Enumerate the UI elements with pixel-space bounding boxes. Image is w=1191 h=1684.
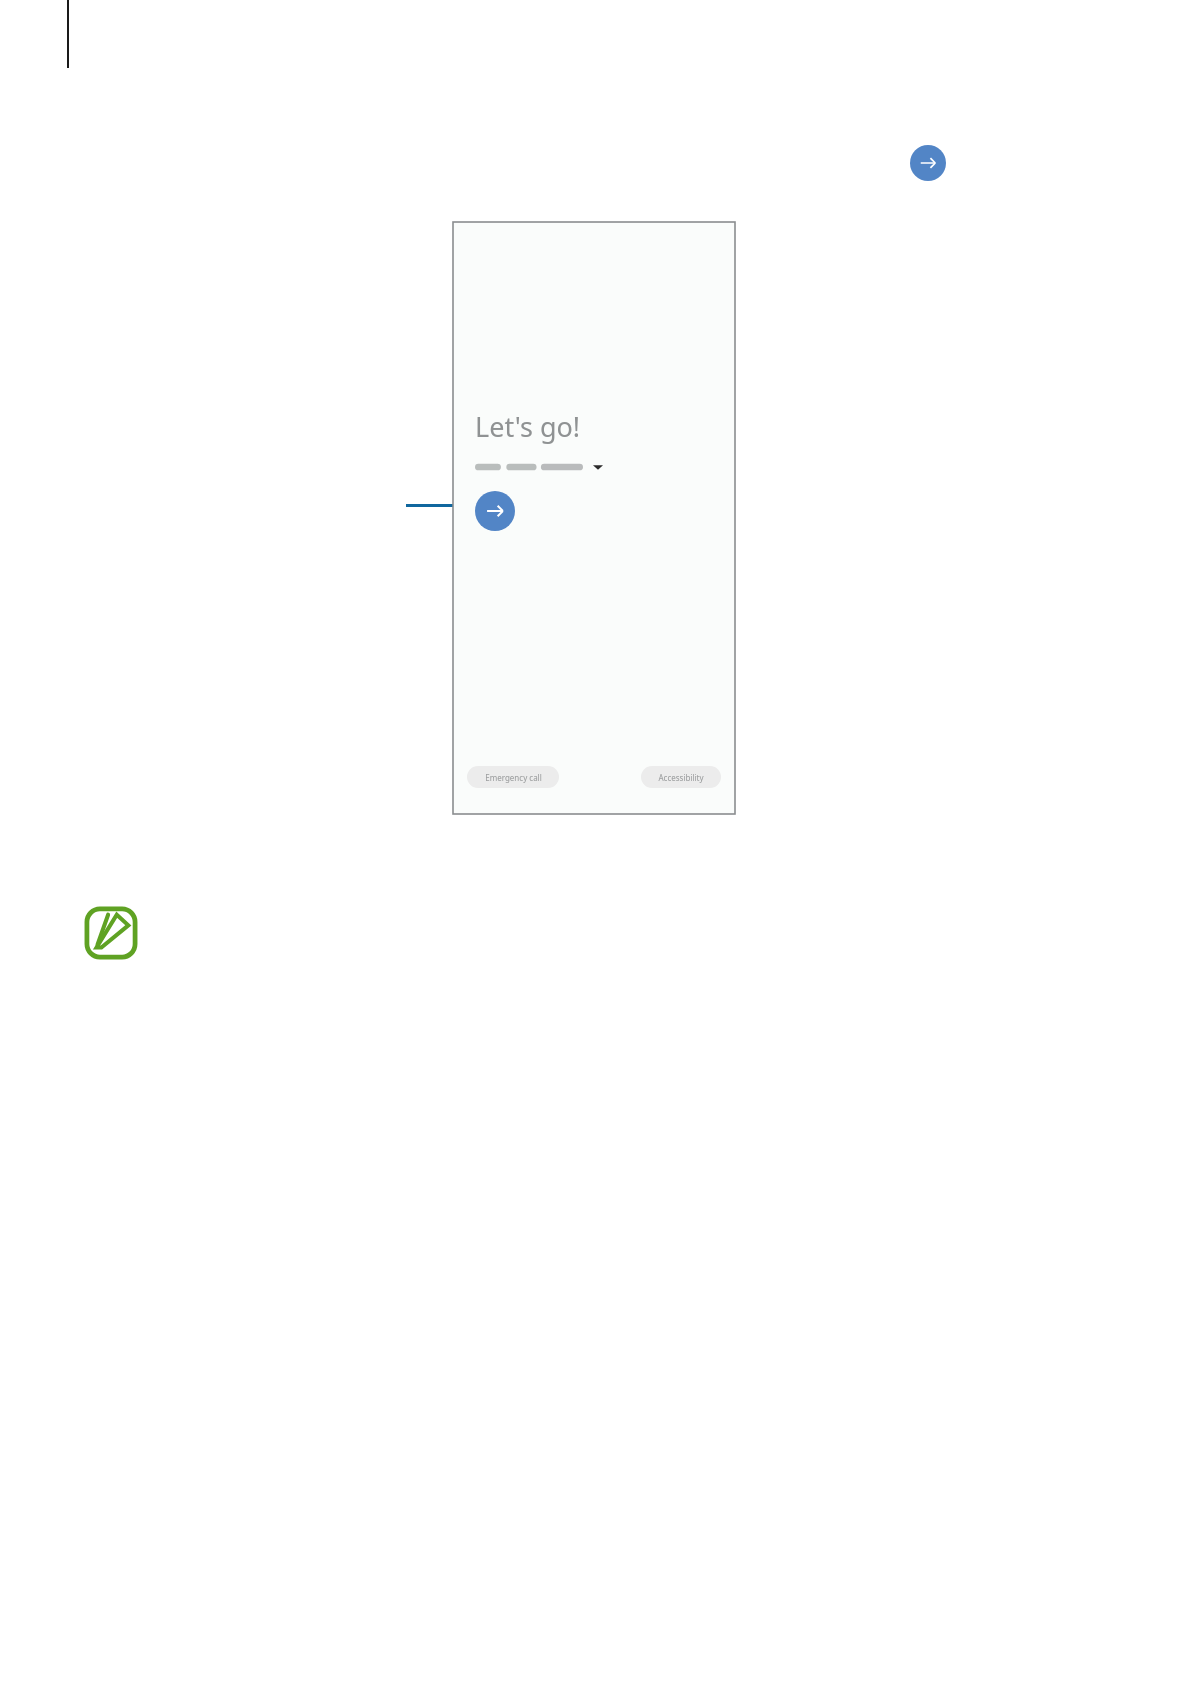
button[interactable]	[475, 461, 603, 473]
button[interactable]: Emergency call	[467, 766, 559, 788]
staticText: Let's go!	[475, 408, 581, 445]
button[interactable]: Accessibility	[641, 766, 721, 788]
button[interactable]: Next	[475, 491, 515, 531]
button[interactable]: Next	[910, 145, 946, 181]
staticText: Emergency call	[485, 772, 542, 783]
staticText: Accessibility	[658, 772, 704, 783]
